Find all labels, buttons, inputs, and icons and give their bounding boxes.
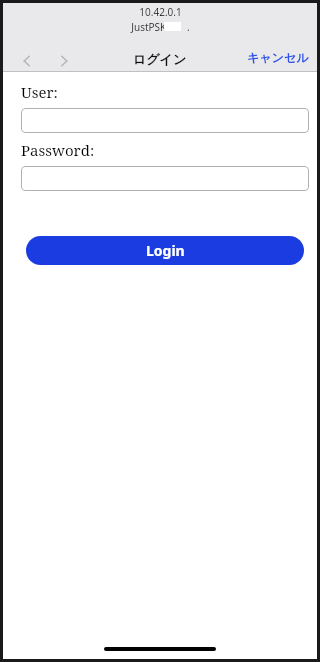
button[interactable]: Login — [26, 236, 304, 265]
staticText: JustPSK . — [131, 20, 190, 34]
button[interactable]: Password field — [21, 166, 309, 191]
button[interactable]: User name field — [21, 108, 309, 133]
staticText: Password: — [21, 140, 95, 160]
button[interactable]: Forward — [50, 47, 78, 75]
staticText: ログイン — [133, 51, 187, 67]
staticText: Login — [146, 241, 185, 260]
staticText: User: — [21, 82, 58, 102]
staticText: キャンセル — [247, 50, 309, 65]
button[interactable]: Back — [13, 47, 41, 75]
staticText: 10.42.0.1 — [139, 5, 182, 19]
button[interactable]: キャンセル — [244, 47, 312, 68]
